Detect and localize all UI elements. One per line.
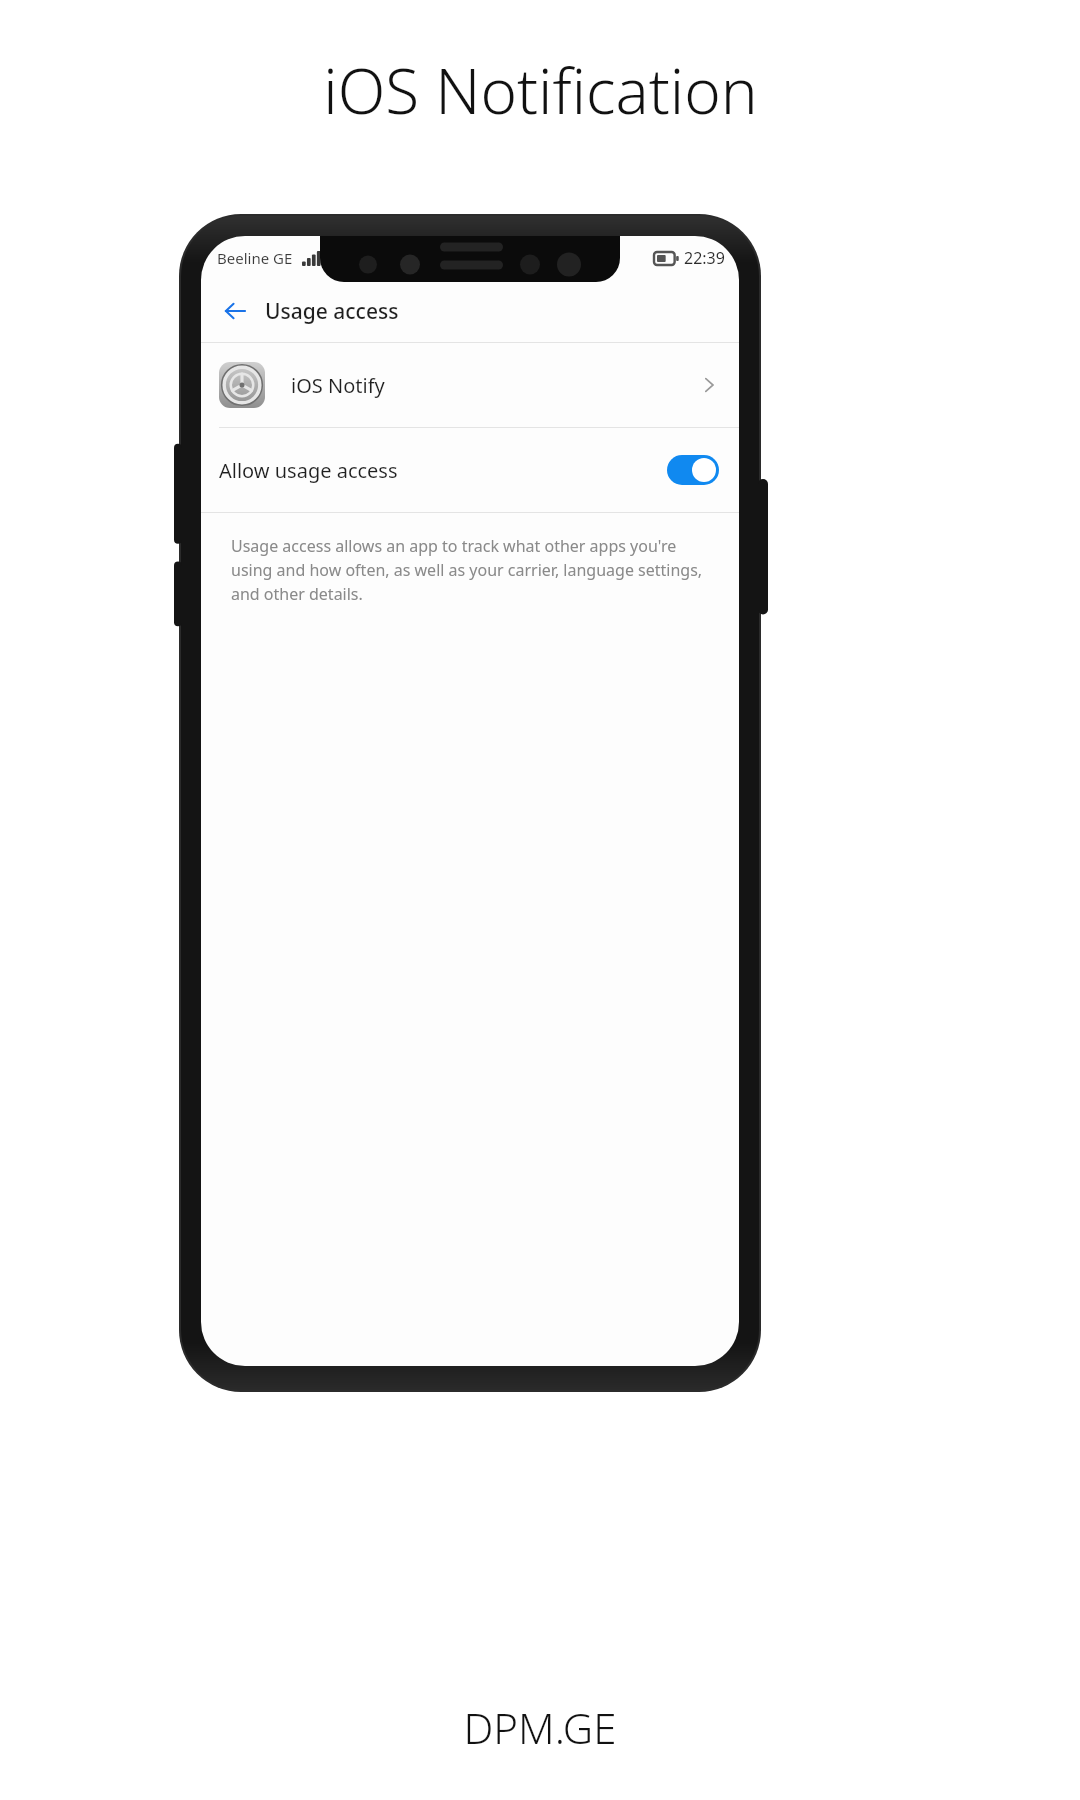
- staticText: Usage access allows an app to track what…: [231, 535, 713, 605]
- button[interactable]: Back: [211, 287, 259, 335]
- other: Allow usage access toggle: [667, 455, 719, 485]
- button[interactable]: iOS Notify: [201, 343, 739, 427]
- staticText: Beeline GE: [217, 248, 293, 268]
- staticText: Allow usage access: [219, 457, 667, 484]
- staticText: 22:39: [684, 247, 725, 269]
- button[interactable]: Allow usage access: [201, 428, 739, 512]
- staticText: DPM.GE: [463, 1699, 617, 1756]
- staticText: Usage access: [265, 297, 399, 326]
- staticText: iOS Notification: [323, 48, 758, 132]
- staticText: iOS Notify: [291, 372, 699, 399]
